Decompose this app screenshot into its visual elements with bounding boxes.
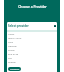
staticText: Seattle <box>8 60 16 63</box>
button[interactable]: Phone <box>8 49 56 56</box>
staticText: 555 0199 <box>8 52 19 55</box>
staticText: Phone <box>8 49 15 52</box>
button[interactable]: Choose a Provider <box>4 0 60 11</box>
button[interactable]: Filter <box>54 25 56 27</box>
staticText: City <box>8 57 12 60</box>
button[interactable]: City <box>8 57 56 64</box>
staticText: Select provider <box>8 24 29 28</box>
staticText: General <box>8 44 17 47</box>
button[interactable]: Name <box>8 33 56 40</box>
staticText: Type <box>8 41 13 44</box>
button[interactable]: Continue <box>8 67 21 71</box>
staticText: Continue <box>10 68 20 71</box>
staticText: Name <box>8 33 15 36</box>
staticText: Mercy Clinic <box>8 36 22 39</box>
button[interactable]: Type <box>8 41 56 48</box>
staticText: Choose a Provider <box>18 4 47 8</box>
